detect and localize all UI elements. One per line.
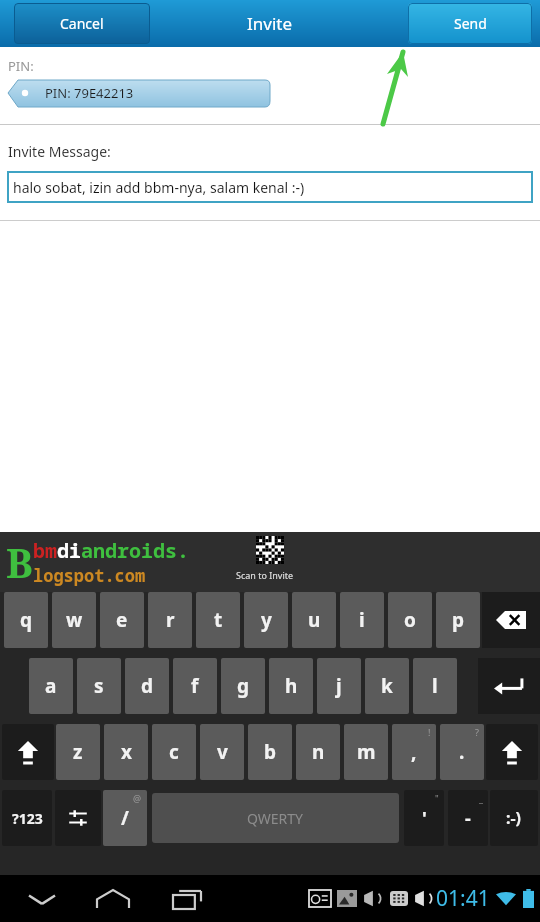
- staticText: _: [479, 792, 483, 804]
- button[interactable]: ?123: [2, 790, 52, 846]
- staticText: s: [94, 673, 104, 699]
- staticText: PIN:: [8, 57, 34, 75]
- staticText: x: [121, 739, 132, 765]
- staticText: n: [312, 739, 325, 765]
- button[interactable]: Space: [152, 793, 399, 843]
- staticText: e: [116, 607, 128, 633]
- staticText: QWERTY: [247, 809, 304, 828]
- button[interactable]: Recent apps: [158, 877, 216, 921]
- button[interactable]: o: [388, 592, 432, 648]
- staticText: a: [45, 673, 57, 699]
- staticText: ,: [411, 739, 417, 765]
- button[interactable]: q: [4, 592, 48, 648]
- button[interactable]: ": [404, 790, 444, 846]
- staticText: bm: [33, 537, 57, 564]
- staticText: 01:41: [436, 884, 490, 913]
- button[interactable]: z: [56, 724, 100, 780]
- button[interactable]: w: [52, 592, 96, 648]
- staticText: ': [422, 806, 427, 831]
- button[interactable]: Cancel: [14, 3, 150, 44]
- staticText: /: [121, 805, 129, 831]
- staticText: i: [359, 607, 365, 633]
- button[interactable]: d: [125, 658, 169, 714]
- button[interactable]: g: [221, 658, 265, 714]
- button[interactable]: p: [436, 592, 480, 648]
- staticText: z: [73, 739, 83, 765]
- button[interactable]: Enter: [478, 658, 540, 714]
- staticText: w: [66, 607, 83, 633]
- button[interactable]: i: [340, 592, 384, 648]
- button[interactable]: e: [100, 592, 144, 648]
- button[interactable]: v: [200, 724, 244, 780]
- button[interactable]: a: [29, 658, 73, 714]
- staticText: Cancel: [60, 14, 104, 33]
- button[interactable]: Hide keyboard: [12, 877, 72, 921]
- button[interactable]: :-): [490, 790, 538, 846]
- button[interactable]: Shift: [486, 724, 538, 780]
- staticText: r: [166, 607, 175, 633]
- button[interactable]: y: [244, 592, 288, 648]
- staticText: ?123: [12, 809, 43, 828]
- button[interactable]: Home: [82, 877, 144, 921]
- staticText: ?: [475, 726, 479, 738]
- staticText: v: [217, 739, 228, 765]
- button[interactable]: j: [317, 658, 361, 714]
- button[interactable]: n: [296, 724, 340, 780]
- staticText: di: [57, 537, 81, 564]
- staticText: b: [264, 739, 277, 765]
- staticText: p: [452, 607, 465, 633]
- button[interactable]: f: [173, 658, 217, 714]
- button[interactable]: !: [392, 724, 436, 780]
- button[interactable]: c: [152, 724, 196, 780]
- button[interactable]: _: [448, 790, 488, 846]
- staticText: c: [169, 739, 179, 765]
- button[interactable]: k: [365, 658, 409, 714]
- button[interactable]: t: [196, 592, 240, 648]
- button[interactable]: Send: [408, 3, 532, 44]
- staticText: .: [459, 739, 465, 765]
- staticText: Send: [454, 14, 487, 33]
- staticText: l: [432, 673, 438, 699]
- button[interactable]: halo sobat, izin add bbm-nya, salam kena…: [7, 171, 533, 203]
- button[interactable]: Input settings: [55, 790, 101, 846]
- button[interactable]: l: [413, 658, 457, 714]
- staticText: d: [141, 673, 154, 699]
- button[interactable]: h: [269, 658, 313, 714]
- staticText: j: [336, 673, 342, 699]
- staticText: halo sobat, izin add bbm-nya, salam kena…: [13, 178, 305, 197]
- staticText: !: [428, 726, 431, 738]
- button[interactable]: Shift: [2, 724, 54, 780]
- staticText: t: [214, 607, 223, 633]
- staticText: androids.: [81, 537, 189, 564]
- button[interactable]: @: [103, 790, 147, 846]
- staticText: Invite: [247, 12, 293, 35]
- staticText: Invite Message:: [8, 142, 111, 161]
- button[interactable]: s: [77, 658, 121, 714]
- staticText: f: [191, 673, 199, 699]
- button[interactable]: u: [292, 592, 336, 648]
- staticText: @: [133, 792, 142, 804]
- button[interactable]: r: [148, 592, 192, 648]
- staticText: ": [435, 792, 439, 804]
- staticText: -: [465, 806, 471, 831]
- staticText: PIN: 79E42213: [45, 84, 134, 102]
- staticText: Scan to Invite: [236, 569, 294, 581]
- button[interactable]: ?: [440, 724, 484, 780]
- staticText: :-): [506, 807, 522, 829]
- staticText: g: [237, 673, 250, 699]
- button[interactable]: m: [344, 724, 388, 780]
- staticText: k: [381, 673, 393, 699]
- button[interactable]: Backspace: [482, 592, 540, 648]
- staticText: m: [357, 739, 376, 765]
- button[interactable]: x: [104, 724, 148, 780]
- staticText: q: [20, 607, 33, 633]
- staticText: o: [404, 607, 416, 633]
- staticText: logspot.com: [33, 564, 146, 587]
- staticText: u: [308, 607, 321, 633]
- staticText: h: [285, 673, 298, 699]
- staticText: y: [261, 607, 272, 633]
- button[interactable]: b: [248, 724, 292, 780]
- staticText: B: [6, 535, 33, 589]
